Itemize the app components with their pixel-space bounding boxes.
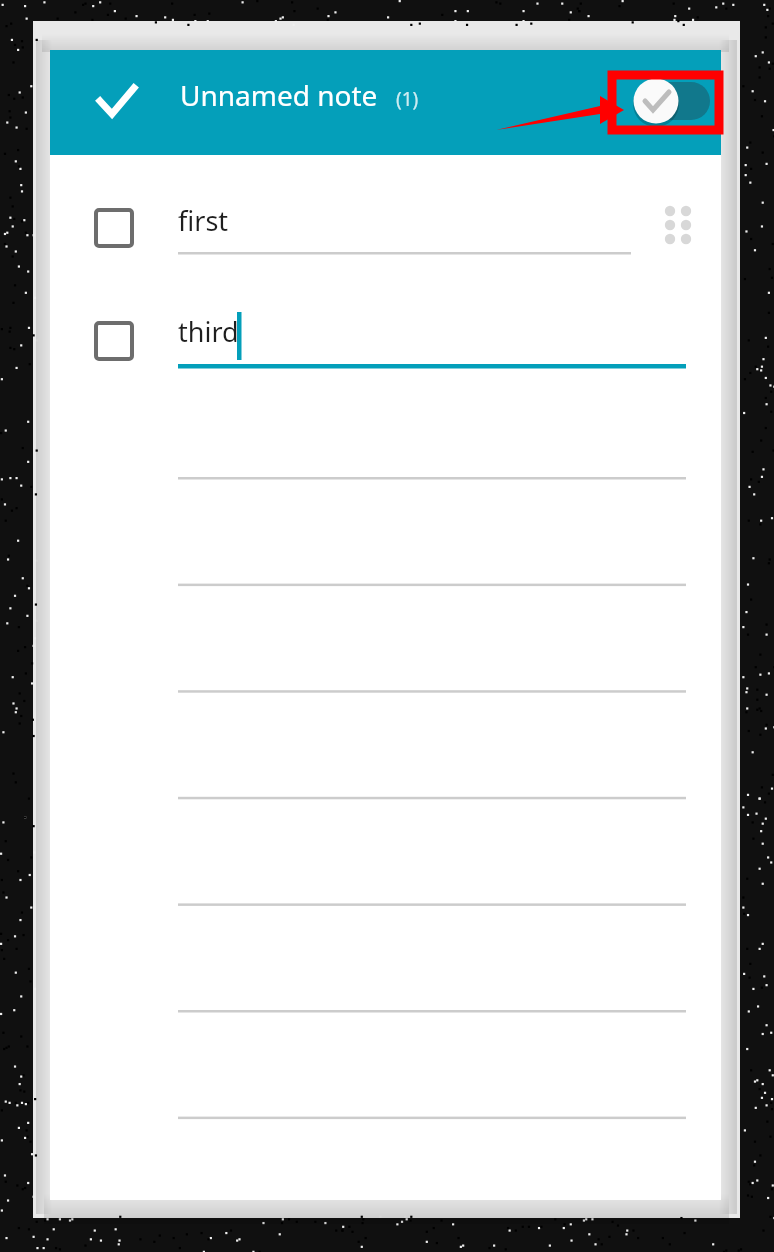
staticText: (1) — [396, 86, 419, 112]
staticText: Unnamed note — [180, 76, 378, 114]
button[interactable]: Check item first — [92, 206, 138, 252]
staticText: third — [178, 313, 239, 350]
button[interactable]: Unnamed note — [180, 76, 378, 114]
button[interactable]: Confirm — [86, 66, 148, 136]
button[interactable]: third — [178, 313, 239, 350]
button[interactable]: Check item third — [92, 319, 138, 365]
button[interactable]: Toggle checklist mode — [636, 76, 716, 126]
button[interactable]: Reorder item — [656, 196, 702, 252]
staticText: first — [178, 202, 229, 239]
button[interactable]: first — [178, 202, 229, 239]
